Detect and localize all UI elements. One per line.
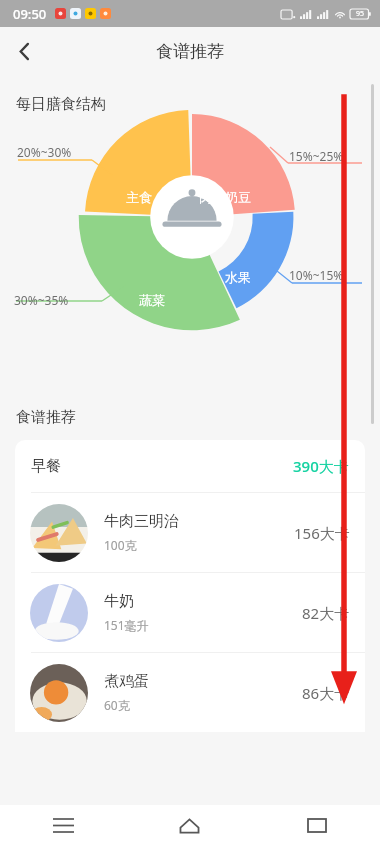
staticText: 牛肉三明治 xyxy=(104,512,179,531)
staticText: 82大卡 xyxy=(302,603,350,623)
button[interactable]: 牛肉三明治 xyxy=(15,493,365,572)
staticText: 156大卡 xyxy=(294,523,350,543)
staticText: 60克 xyxy=(104,697,130,713)
staticText: 09:50 xyxy=(13,5,47,23)
button[interactable]: Back xyxy=(0,27,48,75)
staticText: 15%~25% xyxy=(289,148,344,164)
staticText: 肉蛋奶豆 xyxy=(199,189,251,205)
staticText: 100克 xyxy=(104,537,137,553)
staticText: 水果 xyxy=(225,269,251,285)
button[interactable]: Back xyxy=(253,805,380,845)
staticText: 蔬菜 xyxy=(139,292,165,308)
staticText: 每日膳食结构 xyxy=(16,95,106,114)
staticText: 10%~15% xyxy=(289,267,344,283)
staticText: 30%~35% xyxy=(14,292,69,308)
staticText: 86大卡 xyxy=(302,683,350,703)
staticText: 390大卡 xyxy=(293,456,349,476)
button[interactable]: 牛奶 xyxy=(15,573,365,652)
button[interactable]: 早餐 xyxy=(15,440,365,492)
staticText: 牛奶 xyxy=(104,592,134,611)
staticText: 151毫升 xyxy=(104,617,149,633)
button[interactable]: Home xyxy=(126,805,253,845)
staticText: 20%~30% xyxy=(17,144,72,160)
staticText: 95 xyxy=(356,9,365,19)
staticText: 早餐 xyxy=(31,457,61,476)
staticText: 主食 xyxy=(126,189,152,205)
button[interactable]: 煮鸡蛋 xyxy=(15,653,365,732)
button[interactable]: Recents xyxy=(0,805,126,845)
staticText: 食谱推荐 xyxy=(156,41,224,62)
staticText: 食谱推荐 xyxy=(16,408,76,427)
staticText: 煮鸡蛋 xyxy=(104,672,149,691)
